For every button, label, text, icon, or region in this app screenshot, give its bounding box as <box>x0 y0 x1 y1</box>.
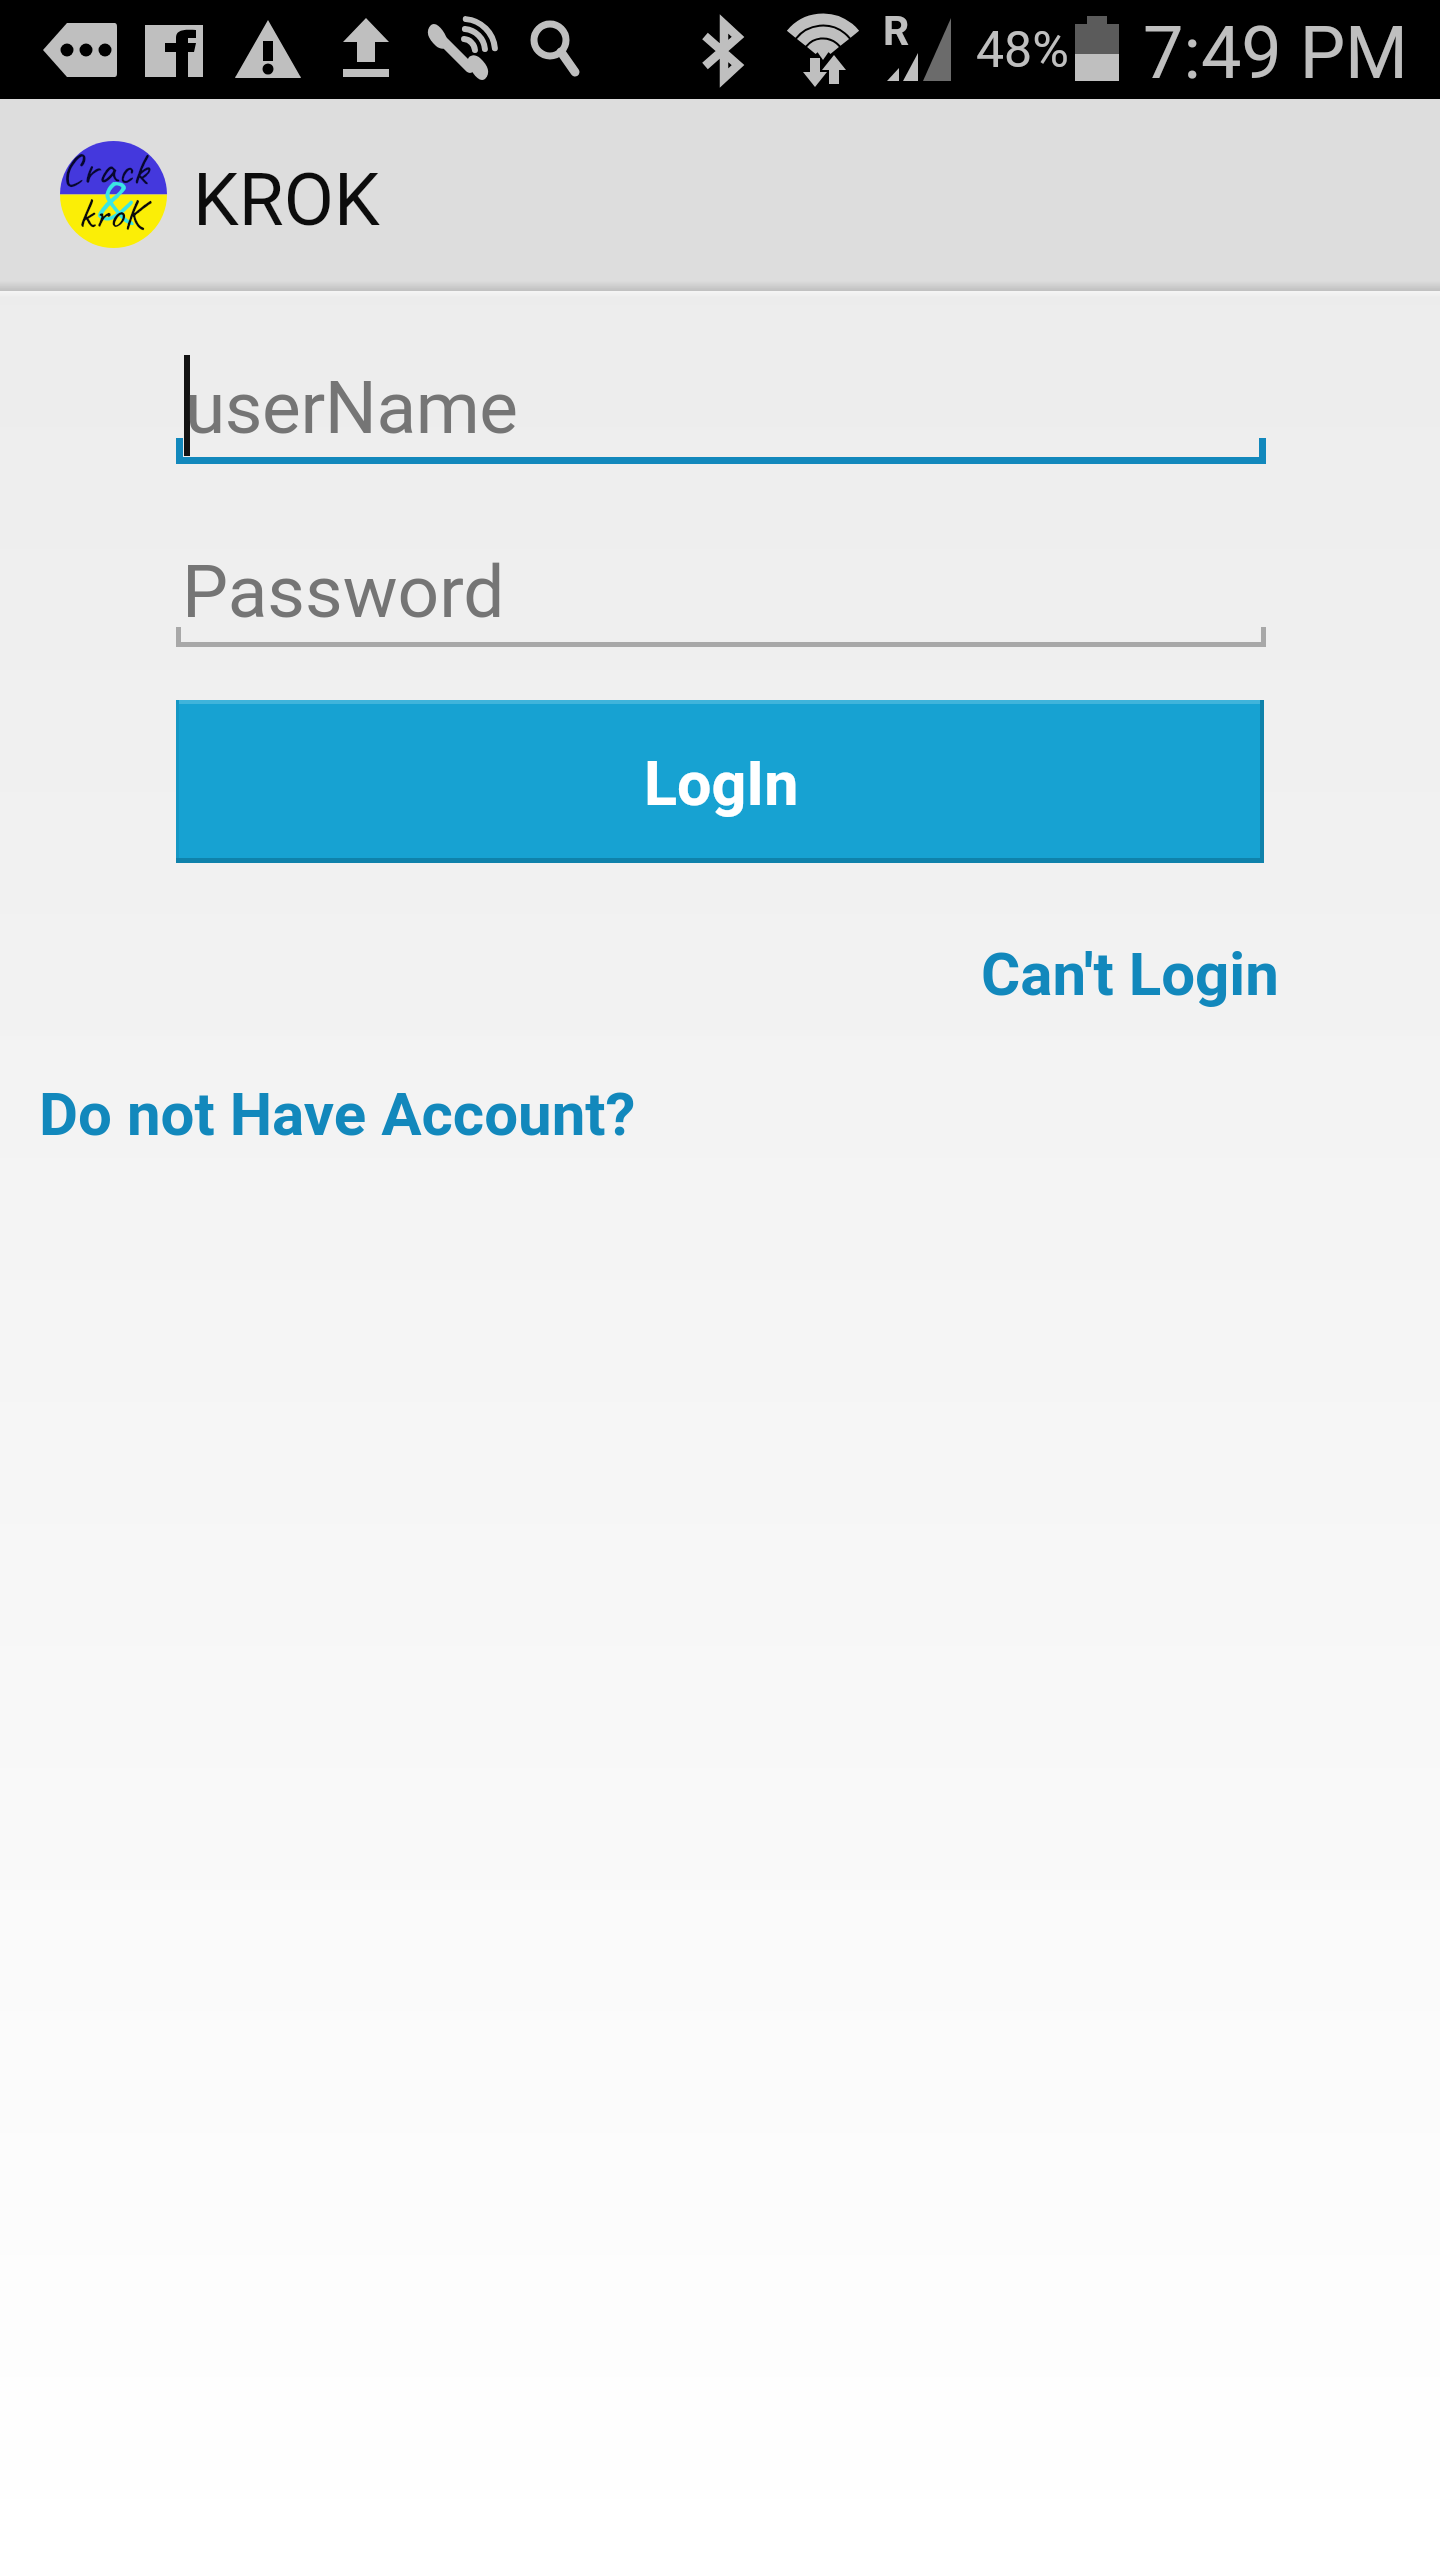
staticText: R <box>883 7 910 55</box>
staticText: Can't Login <box>981 939 1279 1009</box>
button[interactable]: userName <box>176 365 1266 470</box>
staticText: Do not Have Account? <box>39 1079 636 1149</box>
staticText: & <box>94 163 128 239</box>
staticText: kroK <box>78 188 145 241</box>
button[interactable]: Do not Have Account? <box>17 1059 658 1169</box>
button[interactable]: LogIn <box>176 700 1264 863</box>
staticText: LogIn <box>644 748 799 819</box>
staticText: KROK <box>193 157 380 243</box>
button[interactable]: Password <box>176 549 1266 654</box>
staticText: 48% <box>976 21 1069 80</box>
staticText: 7:49 PM <box>1143 11 1408 95</box>
staticText: Crack <box>61 142 149 197</box>
staticText: userName <box>185 365 518 451</box>
other: Crack & krok logo <box>60 141 167 248</box>
button[interactable]: Can't Login <box>959 919 1301 1029</box>
staticText: Password <box>182 549 505 635</box>
